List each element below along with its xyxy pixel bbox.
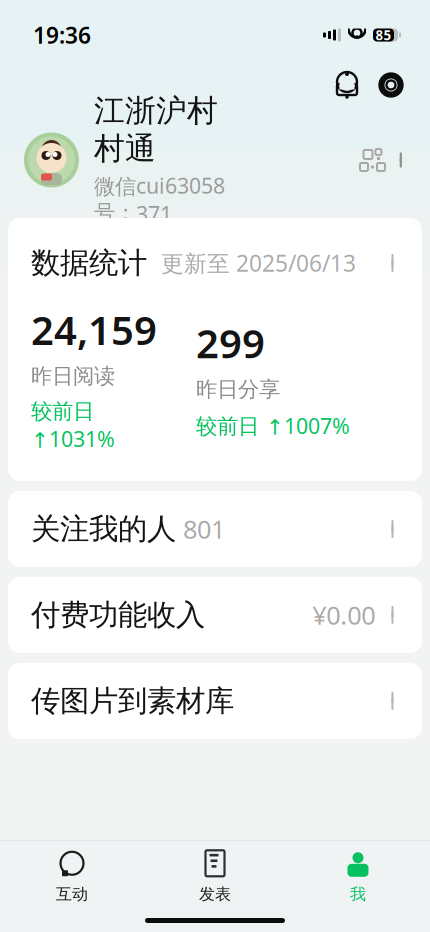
button[interactable]: 数据统计 — [8, 218, 422, 481]
staticText: 较前日 ↑1031% — [31, 398, 115, 453]
staticText: 关注我的人 — [31, 511, 176, 547]
staticText: 299 — [196, 316, 265, 369]
staticText: 付费功能收入 — [31, 597, 205, 633]
staticText: 数据统计 — [31, 245, 147, 281]
staticText: 更新至 2025/06/13 — [147, 248, 356, 278]
button[interactable]: 传图片到素材库 — [8, 663, 422, 739]
staticText: 江浙沪村村通 — [94, 92, 218, 167]
staticText: 发表 — [199, 884, 231, 904]
staticText: 传图片到素材库 — [31, 683, 234, 719]
staticText: ¥0.00 — [312, 598, 375, 632]
staticText: 24,159 — [31, 303, 157, 356]
staticText: 昨日阅读 — [31, 363, 115, 389]
staticText: 85 — [375, 26, 391, 44]
button[interactable]: 通知 — [325, 63, 369, 107]
button[interactable]: 付费功能收入 — [8, 577, 422, 653]
button[interactable]: 我 — [286, 849, 429, 905]
button[interactable]: 发表 — [143, 849, 286, 905]
staticText: 19:36 — [33, 20, 91, 50]
staticText: 较前日 ↑1007% — [196, 411, 350, 440]
staticText: 昨日分享 — [196, 376, 280, 402]
staticText: 我 — [350, 884, 366, 904]
staticText: 互动 — [56, 884, 88, 904]
button[interactable]: 关注我的人 — [8, 491, 422, 567]
button[interactable]: 江浙沪村村通 — [0, 108, 430, 212]
staticText: cui63058371 — [136, 171, 225, 228]
button[interactable]: 设置 — [369, 63, 413, 107]
staticText: 801 — [176, 512, 225, 546]
staticText: 微信号： — [94, 173, 136, 226]
button[interactable]: 互动 — [0, 849, 143, 905]
